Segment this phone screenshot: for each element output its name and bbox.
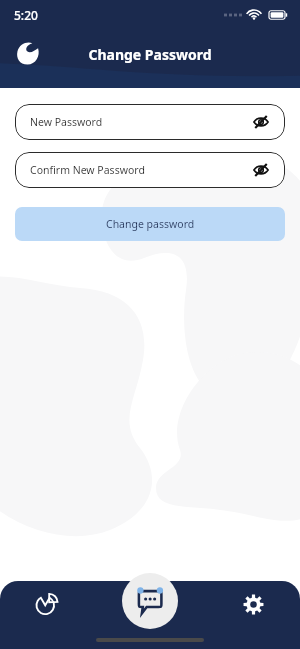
button[interactable]: Show password xyxy=(250,111,272,133)
staticText: New Password xyxy=(30,115,103,129)
button[interactable]: Settings xyxy=(236,587,270,621)
button[interactable]: New Password xyxy=(15,104,285,140)
staticText: Change Password xyxy=(88,45,212,64)
button[interactable]: Chat xyxy=(122,573,178,629)
staticText: Confirm New Password xyxy=(30,163,145,177)
button[interactable]: Confirm New Password xyxy=(15,152,285,188)
button[interactable]: Show password xyxy=(250,159,272,181)
staticText: 5:20 xyxy=(14,7,38,23)
staticText: Change password xyxy=(106,217,195,231)
button[interactable]: Statistics xyxy=(30,587,64,621)
button[interactable]: Change password xyxy=(15,207,285,241)
